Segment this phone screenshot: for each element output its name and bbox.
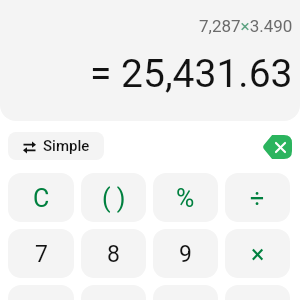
staticText: 8 xyxy=(107,241,120,268)
button[interactable]: × xyxy=(225,229,290,278)
staticText: 7 xyxy=(35,241,48,268)
staticText: Simple xyxy=(43,137,90,155)
staticText: C xyxy=(33,184,50,213)
button[interactable]: 7 xyxy=(8,229,74,278)
staticText: ÷ xyxy=(250,184,265,213)
button[interactable]: 9 xyxy=(153,229,218,278)
staticText: 9 xyxy=(179,241,192,268)
staticText: × xyxy=(251,240,265,269)
staticText: 7,287×3.490 xyxy=(199,16,293,36)
button[interactable]: ( ) xyxy=(81,173,146,222)
button[interactable]: Simple xyxy=(8,132,104,160)
staticText: ( ) xyxy=(102,184,126,213)
staticText: % xyxy=(176,184,195,213)
button[interactable]: 8 xyxy=(81,229,146,278)
staticText: = 25,431.63 xyxy=(90,51,293,97)
button[interactable]: ÷ xyxy=(225,173,290,222)
button[interactable]: C xyxy=(8,173,74,222)
button[interactable]: Delete xyxy=(262,135,292,159)
button[interactable]: % xyxy=(153,173,218,222)
